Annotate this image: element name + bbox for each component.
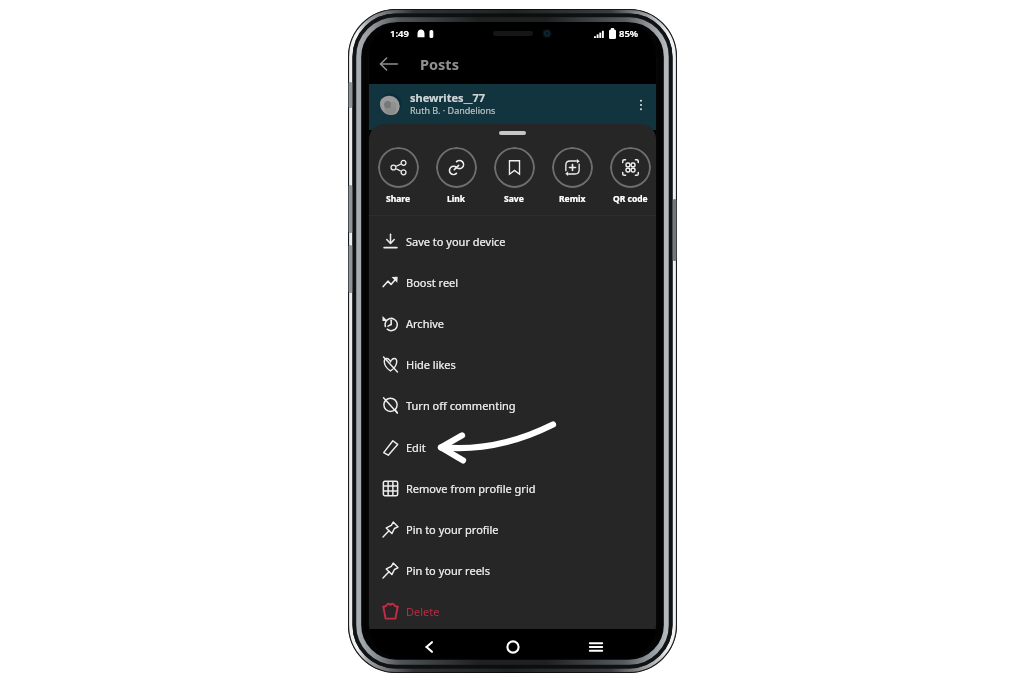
staticText: Edit (406, 440, 426, 455)
button[interactable]: More options (630, 93, 652, 115)
staticText: Archive (406, 316, 445, 331)
button[interactable]: Edit (369, 427, 656, 468)
staticText: Boost reel (406, 275, 459, 290)
staticText: 85% (619, 27, 639, 40)
button[interactable]: Back (414, 632, 444, 659)
button[interactable]: Pin to your reels (369, 550, 656, 591)
staticText: Share (386, 193, 411, 205)
button[interactable]: Pin to your profile (369, 509, 656, 550)
staticText: Pin to your reels (406, 563, 490, 578)
button[interactable]: Link (427, 147, 485, 205)
button[interactable]: Boost reel (369, 262, 656, 303)
staticText: Posts (420, 54, 459, 74)
button[interactable]: Recents (581, 632, 611, 659)
button[interactable]: Home (498, 632, 528, 659)
staticText: Save (504, 193, 524, 205)
staticText: Ruth B. · Dandelions (410, 104, 496, 116)
staticText: Pin to your profile (406, 522, 499, 537)
button[interactable]: Hide likes (369, 344, 656, 385)
staticText: Remove from profile grid (406, 481, 536, 496)
staticText: 1:49 (390, 27, 409, 40)
button[interactable]: Turn off commenting (369, 385, 656, 426)
staticText: QR code (613, 193, 648, 205)
button[interactable]: shewrites__77 (410, 90, 496, 117)
button[interactable]: Back (373, 48, 405, 80)
button[interactable]: Save (485, 147, 543, 205)
button[interactable]: Save to your device (369, 221, 656, 262)
staticText: Turn off commenting (406, 398, 516, 413)
button[interactable]: Remix (543, 147, 601, 205)
staticText: Delete (406, 604, 440, 619)
button[interactable]: Delete (369, 591, 656, 632)
staticText: Link (447, 193, 466, 205)
button[interactable]: QR code (601, 147, 656, 205)
button[interactable]: Archive (369, 303, 656, 344)
button[interactable]: Remove from profile grid (369, 468, 656, 509)
staticText: Remix (559, 193, 586, 205)
staticText: Save to your device (406, 234, 506, 249)
staticText: Hide likes (406, 357, 456, 372)
button[interactable]: Share (369, 147, 427, 205)
staticText: shewrites__77 (410, 90, 486, 105)
